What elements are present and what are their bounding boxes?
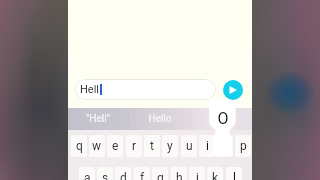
button[interactable]: l: [226, 167, 242, 180]
button[interactable]: w: [89, 135, 105, 157]
button[interactable]: g: [152, 167, 168, 180]
staticText: s: [102, 171, 109, 180]
staticText: f: [140, 171, 145, 180]
staticText: w: [92, 139, 102, 153]
staticText: Hello: [148, 113, 172, 125]
staticText: h: [176, 171, 183, 180]
button[interactable]: [191, 108, 252, 130]
button[interactable]: k: [207, 167, 223, 180]
staticText: j: [196, 171, 199, 180]
staticText: k: [212, 171, 219, 180]
staticText: i: [206, 139, 209, 153]
staticText: y: [167, 139, 173, 153]
staticText: g: [157, 171, 164, 180]
staticText: "Hell": [86, 113, 110, 125]
button[interactable]: Hello: [129, 108, 190, 130]
button[interactable]: s: [97, 167, 113, 180]
button[interactable]: d: [115, 167, 131, 180]
button[interactable]: f: [134, 167, 150, 180]
button[interactable]: p: [235, 135, 251, 157]
button[interactable]: q: [71, 135, 87, 157]
staticText: O: [217, 109, 229, 127]
staticText: u: [186, 139, 193, 153]
button[interactable]: a: [79, 167, 95, 180]
button[interactable]: e: [107, 135, 123, 157]
button[interactable]: i: [199, 135, 215, 157]
staticText: e: [112, 139, 119, 153]
button[interactable]: j: [189, 167, 205, 180]
staticText: p: [240, 139, 247, 153]
staticText: t: [150, 139, 154, 153]
staticText: q: [76, 139, 83, 153]
button[interactable]: y: [162, 135, 178, 157]
button[interactable]: "Hell": [68, 108, 128, 130]
button[interactable]: Hell: [75, 79, 216, 100]
button[interactable]: Send: [223, 80, 243, 100]
staticText: d: [120, 171, 127, 180]
button[interactable]: h: [171, 167, 187, 180]
staticText: Hell: [80, 83, 100, 96]
staticText: r: [132, 139, 137, 153]
button[interactable]: u: [181, 135, 197, 157]
staticText: l: [233, 171, 236, 180]
button[interactable]: t: [144, 135, 160, 157]
button[interactable]: r: [126, 135, 142, 157]
staticText: a: [84, 171, 91, 180]
